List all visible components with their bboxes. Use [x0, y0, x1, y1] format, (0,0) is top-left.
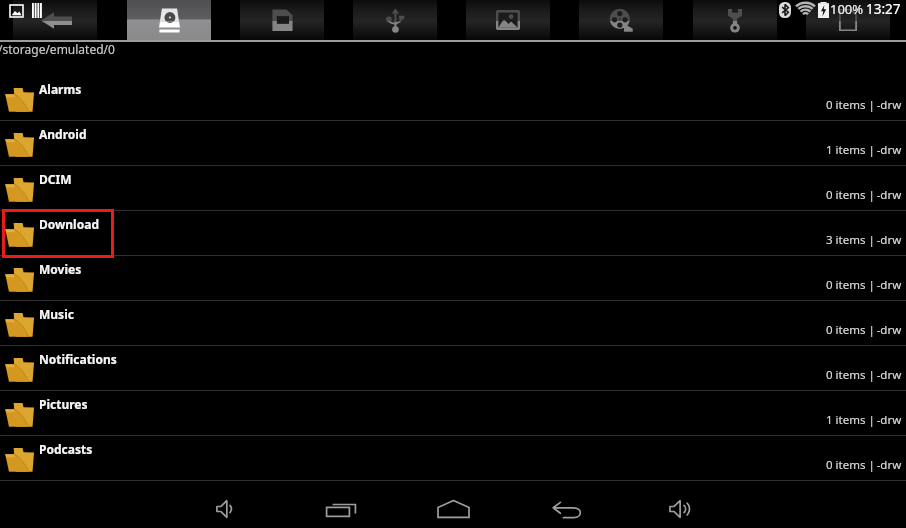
staticText: 0 items | -drw — [826, 322, 902, 338]
staticText: 1 items | -drw — [826, 142, 902, 158]
button[interactable]: Back — [41, 12, 72, 29]
staticText: 100% — [830, 0, 864, 18]
staticText: Movies — [39, 261, 82, 277]
staticText: Alarms — [39, 81, 82, 97]
button[interactable]: USB — [353, 0, 437, 40]
button[interactable]: Music — [0, 301, 906, 346]
button[interactable]: DCIM — [0, 166, 906, 211]
button[interactable]: Documents — [806, 0, 890, 40]
staticText: 13:27 — [866, 0, 901, 18]
staticText: /storage/emulated/0 — [0, 41, 115, 57]
staticText: 0 items | -drw — [826, 367, 902, 383]
button[interactable]: Download — [0, 211, 906, 256]
button[interactable]: Alarms — [0, 76, 906, 121]
staticText: 1 items | -drw — [826, 412, 902, 428]
button[interactable]: SD card — [240, 0, 324, 40]
button[interactable]: Podcasts — [0, 436, 906, 481]
button[interactable]: Volume up — [658, 495, 702, 523]
staticText: Music — [39, 306, 74, 322]
button[interactable]: Internal storage — [127, 0, 211, 40]
button[interactable]: Back — [545, 495, 589, 523]
button[interactable]: Back — [13, 0, 97, 40]
staticText: DCIM — [39, 171, 72, 187]
staticText: 0 items | -drw — [826, 97, 902, 113]
staticText: 0 items | -drw — [826, 187, 902, 203]
staticText: Notifications — [39, 351, 117, 367]
button[interactable]: Movies — [579, 0, 663, 40]
button[interactable]: Gallery — [466, 0, 550, 40]
button[interactable]: Recents — [319, 495, 363, 523]
button[interactable]: Android — [0, 121, 906, 166]
staticText: 0 items | -drw — [826, 277, 902, 293]
button[interactable]: Home — [431, 495, 475, 523]
staticText: Pictures — [39, 396, 88, 412]
button[interactable]: Volume down — [203, 495, 247, 523]
staticText: Android — [39, 126, 87, 142]
button[interactable]: Tools — [693, 0, 777, 40]
staticText: 0 items | -drw — [826, 457, 902, 473]
button[interactable]: Notifications — [0, 346, 906, 391]
button[interactable]: Pictures — [0, 391, 906, 436]
button[interactable]: Movies — [0, 256, 906, 301]
staticText: 3 items | -drw — [826, 232, 902, 248]
staticText: Download — [39, 216, 99, 232]
staticText: Podcasts — [39, 441, 93, 457]
